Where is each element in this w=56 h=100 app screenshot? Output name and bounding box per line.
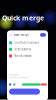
staticText: Quick merge <box>2 14 44 22</box>
staticText: Needs review <box>14 54 31 58</box>
button[interactable]: Conflicts resolved <box>7 39 48 46</box>
button[interactable] <box>7 89 40 95</box>
staticText: Conflicts resolved <box>14 41 39 44</box>
staticText: Tests passing <box>14 48 31 51</box>
button[interactable]: Tests passing <box>7 46 48 53</box>
button[interactable]: Needs review <box>7 53 48 59</box>
button[interactable]: Smart merge <box>7 30 48 39</box>
staticText: Smart merge <box>13 33 29 37</box>
